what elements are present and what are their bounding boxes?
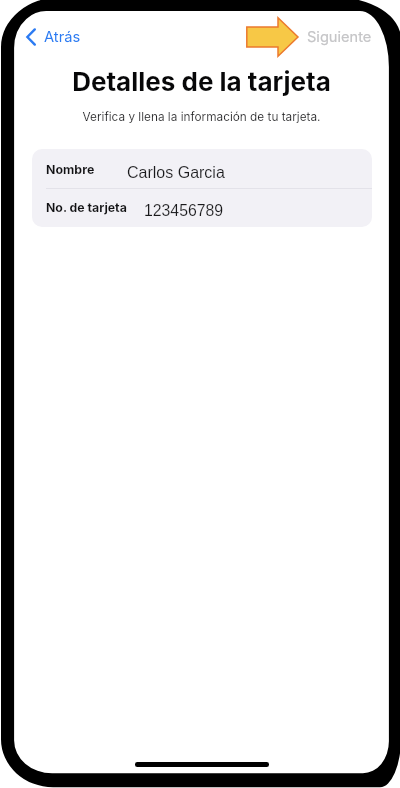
- staticText: Detalles de la tarjeta: [72, 66, 331, 97]
- button[interactable]: No. de tarjeta: [32, 189, 372, 227]
- button[interactable]: Nombre: [32, 149, 372, 188]
- staticText: No. de tarjeta: [46, 200, 127, 215]
- staticText: Carlos Garcia: [127, 164, 225, 182]
- staticText: Atrás: [44, 28, 81, 46]
- staticText: Verifica y llena la información de tu ta…: [82, 110, 321, 124]
- staticText: Nombre: [46, 162, 95, 177]
- other: Siguiente: [245, 14, 300, 60]
- button[interactable]: Siguiente: [245, 14, 372, 60]
- staticText: Siguiente: [307, 28, 372, 46]
- staticText: 123456789: [144, 202, 224, 220]
- button[interactable]: Atrás: [26, 28, 81, 46]
